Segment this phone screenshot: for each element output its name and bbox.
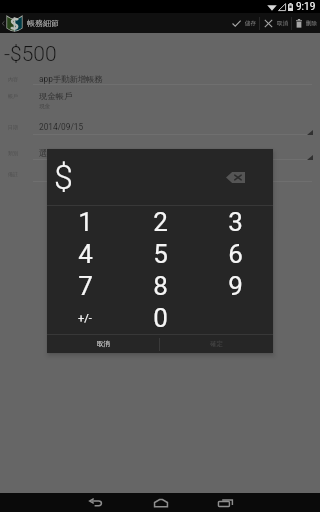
staticText: -$500	[4, 42, 57, 67]
staticText: 5	[153, 239, 168, 269]
staticText: 7	[78, 271, 93, 301]
button[interactable]: 8	[123, 270, 198, 302]
button[interactable]: 日期	[0, 122, 320, 132]
staticText: 3	[228, 207, 243, 237]
button[interactable]: 取消	[47, 335, 159, 353]
staticText: 確定	[210, 340, 223, 348]
staticText: $	[54, 157, 73, 197]
button[interactable]: Home	[140, 493, 181, 512]
button[interactable]: 4	[47, 238, 123, 270]
staticText: 2014/09/15	[39, 122, 84, 132]
staticText: 儲存	[245, 20, 256, 27]
button[interactable]: Back	[75, 493, 116, 512]
staticText: 2	[153, 207, 168, 237]
button[interactable]: 類別	[0, 148, 320, 158]
button[interactable]: Backspace	[226, 172, 245, 183]
staticText: 刪除	[306, 20, 317, 27]
staticText: 選擇	[39, 148, 56, 158]
button[interactable]: 9	[198, 270, 273, 302]
button[interactable]: 7	[47, 270, 123, 302]
staticText: 現金	[39, 103, 51, 110]
button[interactable]: 2	[123, 206, 198, 238]
staticText: 日期	[8, 124, 18, 130]
button[interactable]: 內容	[0, 74, 320, 84]
staticText: app手動新增帳務	[39, 74, 103, 84]
button[interactable]: +/-	[47, 302, 123, 334]
staticText: 9:19	[296, 1, 316, 13]
button[interactable]: 5	[123, 238, 198, 270]
button[interactable]: 1	[47, 206, 123, 238]
staticText: 4	[78, 239, 93, 269]
staticText: 取消	[97, 340, 110, 348]
staticText: 現金帳戶	[39, 91, 73, 101]
button[interactable]: 儲存	[228, 13, 259, 33]
staticText: 6	[228, 239, 243, 269]
staticText: +/-	[78, 312, 92, 325]
staticText: 備註	[8, 171, 18, 177]
staticText: 類別	[8, 150, 18, 156]
staticText: 0	[153, 303, 168, 333]
button[interactable]: 帳戶	[0, 91, 320, 110]
staticText: 帳戶	[8, 93, 18, 99]
button[interactable]: Recent apps	[205, 493, 246, 512]
button[interactable]: 0	[123, 302, 198, 334]
staticText: 9	[228, 271, 243, 301]
staticText: 1	[78, 207, 93, 237]
button[interactable]: 3	[198, 206, 273, 238]
button[interactable]: 備註	[0, 169, 320, 177]
staticText: 8	[153, 271, 168, 301]
staticText: 內容	[8, 76, 18, 82]
staticText: 帳務細節	[27, 18, 59, 28]
staticText: 取消	[277, 20, 288, 27]
button[interactable]: 刪除	[292, 13, 320, 33]
button[interactable]: 取消	[260, 13, 291, 33]
button[interactable]: 6	[198, 238, 273, 270]
